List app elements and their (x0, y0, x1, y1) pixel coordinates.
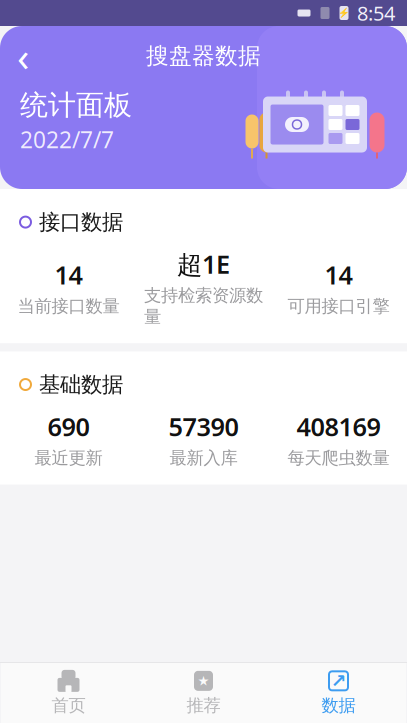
staticText: ⚡️ (338, 8, 350, 18)
staticText: 每天爬虫数量 (287, 447, 389, 469)
staticText: 搜盘器数据 (146, 42, 261, 70)
staticText: 超1E (177, 247, 230, 281)
staticText: 可用接口引擎 (287, 295, 389, 317)
button[interactable]: ↗ (271, 663, 406, 723)
staticText: 接口数据 (39, 209, 123, 235)
staticText: 408169 (296, 410, 380, 443)
staticText: ★ (197, 673, 209, 688)
button[interactable]: 首页 (1, 663, 136, 723)
staticText: ‹ (17, 29, 29, 82)
staticText: ↗ (330, 670, 346, 691)
staticText: 最新入库 (169, 447, 237, 469)
staticText: 支持检索资源数量 (144, 285, 263, 327)
button[interactable]: Back (0, 34, 46, 78)
staticText: 首页 (51, 695, 85, 716)
staticText: 690 (47, 410, 89, 443)
staticText: 数据 (321, 695, 355, 716)
staticText: 14 (54, 258, 82, 291)
staticText: 14 (324, 258, 352, 291)
staticText: 57390 (168, 410, 238, 443)
staticText: 8:54 (357, 0, 395, 26)
staticText: 基础数据 (39, 371, 123, 398)
button[interactable]: ★ (136, 663, 271, 723)
staticText: 当前接口数量 (17, 295, 119, 317)
staticText: 推荐 (186, 695, 220, 716)
staticText: 统计面板 (20, 88, 132, 122)
staticText: 最近更新 (34, 447, 102, 469)
staticText: 2022/7/7 (20, 124, 114, 154)
